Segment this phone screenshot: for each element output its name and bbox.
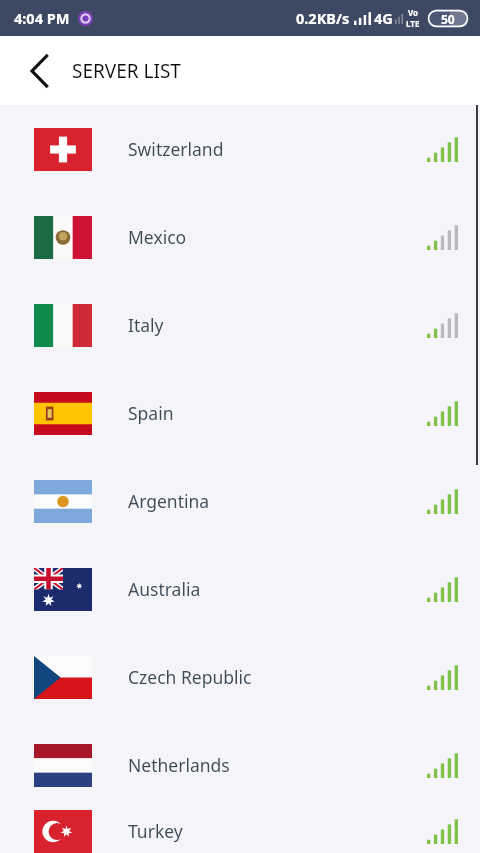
staticText: LTE (406, 18, 420, 29)
staticText: Mexico (128, 225, 187, 249)
button[interactable]: Switzerland (0, 105, 480, 193)
staticText: Spain (128, 401, 174, 425)
button[interactable]: Turkey (0, 809, 480, 853)
button[interactable]: Argentina (0, 457, 480, 545)
button[interactable]: Mexico (0, 193, 480, 281)
button[interactable]: Czech Republic (0, 633, 480, 721)
staticText: 4:04 PM (14, 8, 70, 28)
staticText: Australia (128, 577, 201, 601)
staticText: Czech Republic (128, 665, 252, 689)
button[interactable]: Australia (0, 545, 480, 633)
button[interactable]: Netherlands (0, 721, 480, 809)
button[interactable]: Spain (0, 369, 480, 457)
button[interactable]: Back (16, 48, 62, 94)
staticText: Vo (408, 7, 419, 18)
staticText: Argentina (128, 489, 210, 513)
button[interactable]: Italy (0, 281, 480, 369)
staticText: 50 (441, 11, 455, 27)
staticText: 0.2KB/s (296, 8, 350, 28)
staticText: Italy (128, 313, 164, 337)
staticText: Turkey (128, 819, 183, 843)
staticText: SERVER LIST (72, 58, 181, 84)
staticText: Switzerland (128, 137, 224, 161)
staticText: Netherlands (128, 753, 230, 777)
staticText: 4G (374, 8, 393, 28)
